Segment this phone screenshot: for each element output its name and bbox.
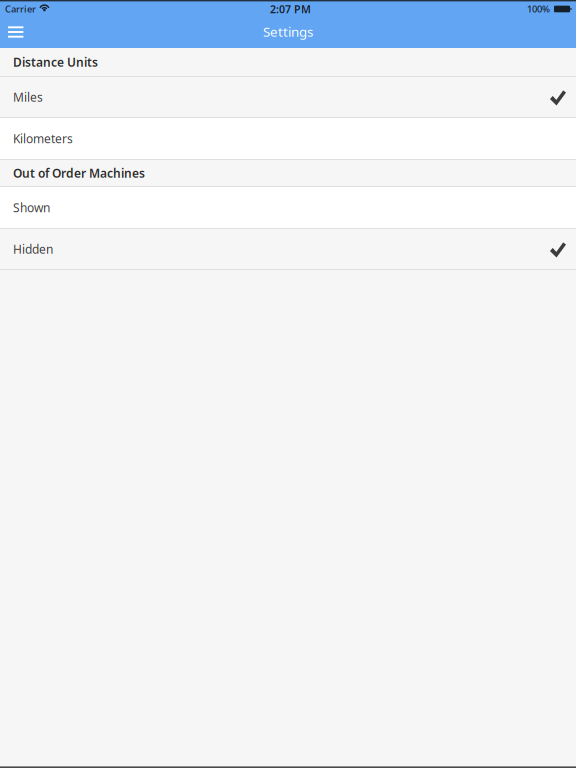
- button[interactable]: Shown: [0, 187, 576, 228]
- button[interactable]: Menu: [0, 18, 46, 48]
- staticText: 2:07 PM: [270, 2, 311, 16]
- staticText: Miles: [13, 89, 43, 105]
- button[interactable]: Miles: [0, 77, 576, 117]
- staticText: Out of Order Machines: [13, 165, 145, 181]
- button[interactable]: Hidden: [0, 229, 576, 269]
- staticText: Distance Units: [13, 54, 98, 70]
- staticText: Carrier: [5, 3, 36, 15]
- staticText: Settings: [263, 23, 313, 40]
- staticText: 100%: [527, 3, 550, 15]
- staticText: Shown: [13, 199, 50, 215]
- staticText: Kilometers: [13, 130, 73, 146]
- button[interactable]: Kilometers: [0, 118, 576, 159]
- staticText: Hidden: [13, 241, 53, 257]
